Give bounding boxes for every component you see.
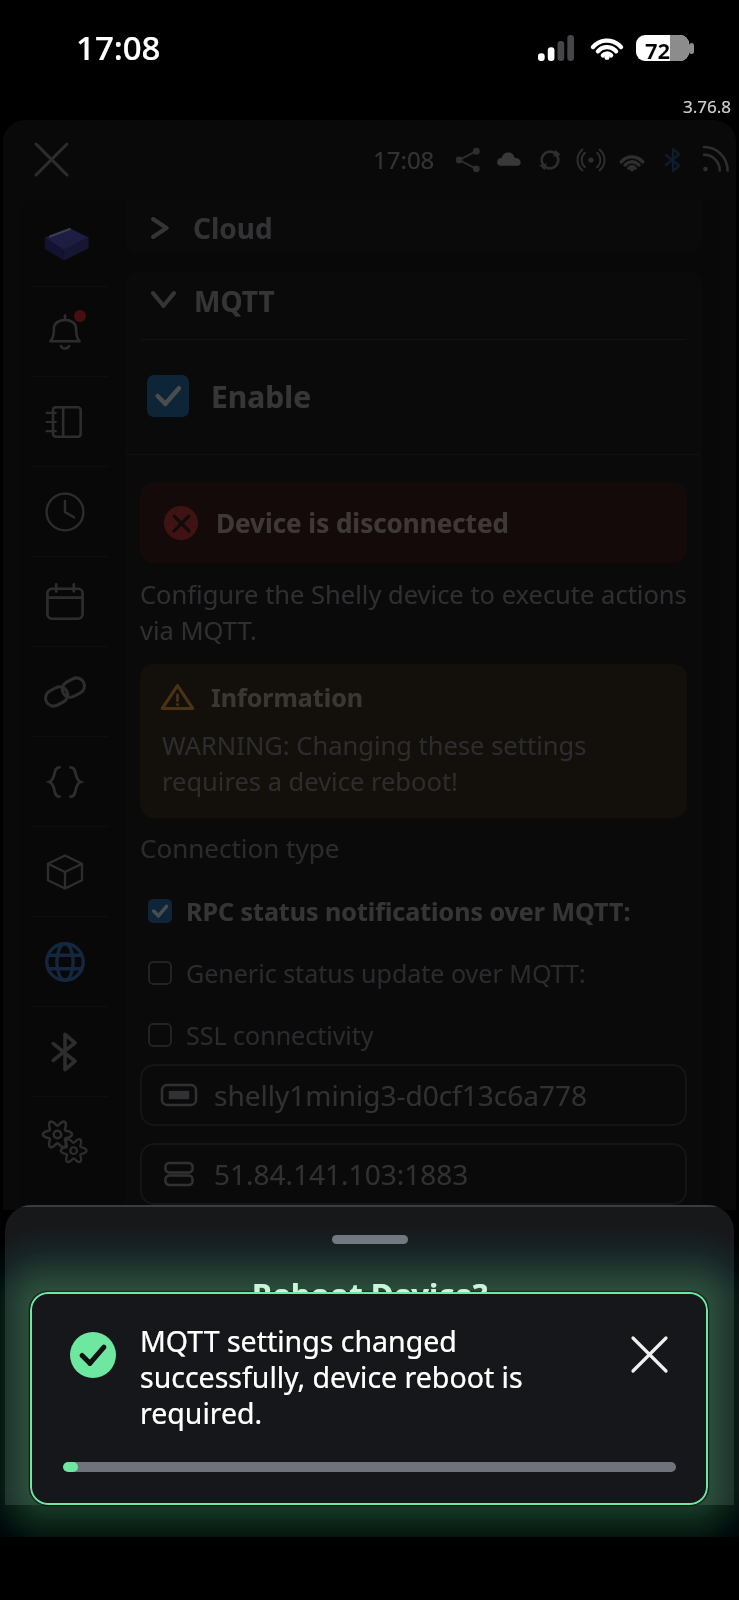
button[interactable]: Bluetooth <box>18 1007 111 1096</box>
staticText: 3.76.8 <box>683 95 732 118</box>
button[interactable]: Components <box>18 827 111 916</box>
staticText: WARNING: Changing these settings require… <box>162 728 673 799</box>
button[interactable]: Device <box>18 198 111 286</box>
button[interactable]: Close <box>23 131 79 187</box>
button[interactable]: Broadcast <box>570 139 611 180</box>
button[interactable]: Bluetooth <box>652 139 693 180</box>
button[interactable]: WiFi <box>611 139 652 180</box>
staticText: SSL connectivity <box>186 1018 374 1052</box>
button[interactable]: Cloud <box>488 139 529 180</box>
button[interactable]: Dismiss <box>621 1326 677 1382</box>
staticText: Device is disconnected <box>216 505 509 540</box>
staticText: Generic status update over MQTT: <box>186 956 586 990</box>
button[interactable]: Generic status update over MQTT: <box>148 944 586 1001</box>
staticText: 72 <box>645 35 671 61</box>
staticText: Reboot Device? <box>252 1273 488 1315</box>
button[interactable]: Logs <box>18 377 111 466</box>
staticText: Cloud <box>193 209 273 247</box>
button[interactable]: Webhooks <box>18 647 111 736</box>
button[interactable]: MQTT <box>125 272 702 339</box>
button[interactable]: RPC status notifications over MQTT: <box>148 882 631 939</box>
button[interactable]: Schedule <box>18 467 111 556</box>
button[interactable]: Enable <box>147 375 312 417</box>
button[interactable]: Cloud <box>125 198 702 253</box>
button[interactable]: Notifications <box>18 287 111 376</box>
button[interactable]: Settings <box>18 1097 111 1186</box>
button[interactable]: Network <box>18 917 111 1006</box>
staticText: MQTT <box>194 282 275 320</box>
button[interactable]: Sync <box>529 139 570 180</box>
button[interactable]: SSL connectivity <box>148 1006 374 1063</box>
staticText: RPC status notifications over MQTT: <box>186 894 631 928</box>
button[interactable]: Signal <box>693 139 734 180</box>
staticText: 17:08 <box>373 143 435 176</box>
button[interactable]: shelly1minig3-d0cf13c6a778 <box>140 1064 687 1126</box>
staticText: MQTT settings changed successfully, devi… <box>140 1322 595 1433</box>
staticText: 17:08 <box>76 25 161 70</box>
staticText: Configure the Shelly device to execute a… <box>140 577 698 648</box>
staticText: Connection type <box>140 830 340 865</box>
button[interactable]: 51.84.141.103:1883 <box>140 1143 687 1205</box>
button[interactable]: Scripts <box>18 737 111 826</box>
staticText: Enable <box>211 376 312 417</box>
staticText: Information <box>211 680 364 714</box>
button[interactable]: Share <box>447 139 488 180</box>
staticText: 51.84.141.103:1883 <box>214 1155 469 1193</box>
button[interactable]: Calendar <box>18 557 111 646</box>
staticText: shelly1minig3-d0cf13c6a778 <box>214 1076 587 1114</box>
